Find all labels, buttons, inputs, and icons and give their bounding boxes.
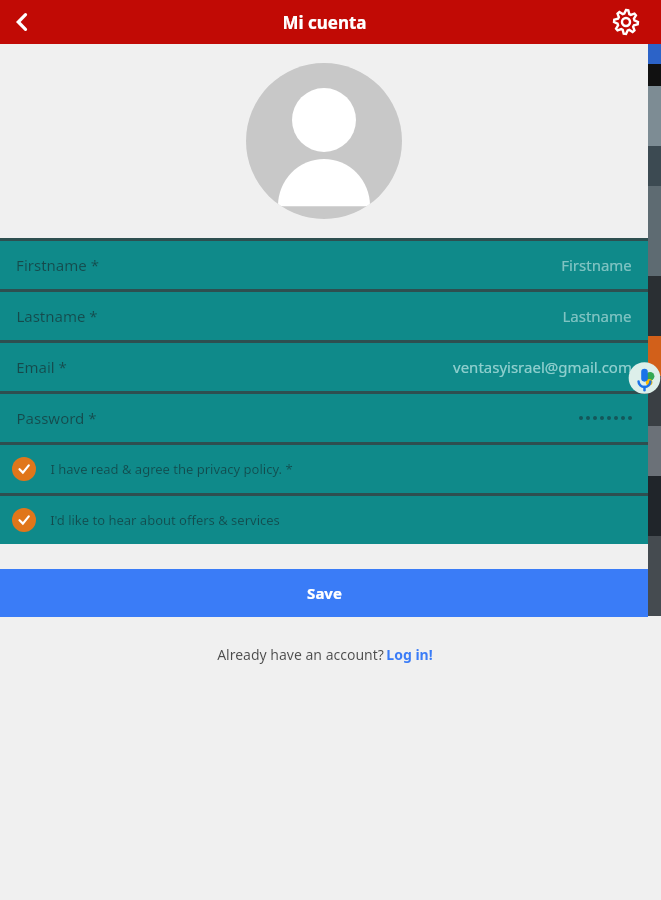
staticText: Lastname * (16, 306, 98, 326)
staticText: Firstname * (16, 255, 99, 275)
button[interactable]: Log in! (386, 645, 433, 664)
staticText: Save (307, 583, 342, 603)
button[interactable]: Save (0, 569, 648, 617)
staticText: I'd like to hear about offers & services (50, 511, 280, 529)
staticText: ventasyisrael@gmail.com (453, 357, 632, 377)
button[interactable]: Settings (604, 0, 648, 44)
button[interactable]: Firstname * (0, 241, 648, 289)
button[interactable]: Password * (0, 394, 648, 442)
button[interactable]: Lastname * (0, 292, 648, 340)
button[interactable]: I have read & agree the privacy policy. … (0, 445, 648, 493)
button[interactable]: Profile photo (246, 63, 402, 219)
staticText: Already have an account? (215, 645, 386, 664)
staticText: I have read & agree the privacy policy. … (50, 460, 293, 478)
staticText: Firstname (561, 255, 632, 275)
staticText: Mi cuenta (282, 11, 367, 34)
staticText: Email * (16, 357, 67, 377)
staticText: Password * (16, 408, 97, 428)
staticText: Log in! (386, 645, 433, 664)
button[interactable]: Voice assistant (628, 360, 661, 396)
button[interactable]: I'd like to hear about offers & services (0, 496, 648, 544)
staticText: Lastname (562, 306, 632, 326)
button[interactable]: Back (0, 0, 44, 44)
button[interactable]: Email * (0, 343, 648, 391)
